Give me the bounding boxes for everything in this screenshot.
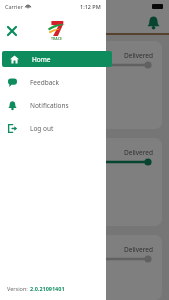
button[interactable]: Notifications <box>0 97 106 113</box>
staticText: Version: <box>7 285 30 292</box>
staticText: Delivered <box>124 245 153 254</box>
button[interactable]: Feedback <box>0 74 106 90</box>
staticText: AM <box>16 288 27 293</box>
button[interactable]: Delivered <box>7 138 162 226</box>
button[interactable]: Log out <box>0 120 106 136</box>
staticText: Delivered <box>124 51 153 60</box>
button[interactable]: Delivered <box>7 235 162 300</box>
staticText: Home <box>32 55 51 64</box>
button[interactable]: Notifications <box>147 16 160 29</box>
staticText: Feedback <box>30 78 59 87</box>
staticText: TRACE <box>51 36 62 41</box>
staticText: Carrier <box>5 3 23 10</box>
staticText: Delivered <box>124 148 153 157</box>
staticText: Notifications <box>30 101 69 110</box>
button[interactable]: Close menu <box>5 24 19 38</box>
staticText: Log out <box>30 124 54 133</box>
staticText: 1:12 PM <box>80 3 101 10</box>
button[interactable]: Delivered <box>7 41 162 129</box>
staticText: 2.0.21091401 <box>30 285 65 292</box>
button[interactable]: Home <box>2 51 112 67</box>
